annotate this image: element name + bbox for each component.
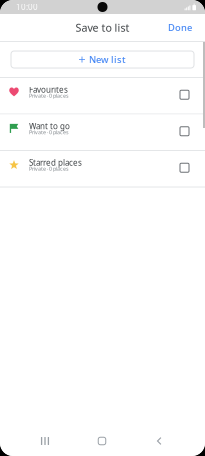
staticText: Done — [168, 21, 192, 34]
button[interactable]: Recent apps — [23, 426, 67, 456]
button[interactable]: Back — [137, 426, 181, 456]
staticText: Private · 0 places — [29, 92, 69, 99]
staticText: Starred places — [29, 157, 82, 168]
staticText: Private · 0 places — [29, 165, 69, 172]
staticText: Favourites — [29, 84, 68, 95]
button[interactable]: Done — [156, 14, 205, 41]
staticText: Private · 0 places — [29, 128, 69, 136]
staticText: New list — [89, 53, 126, 66]
button[interactable]: Favourites — [0, 78, 205, 113]
button[interactable]: Starred places — [0, 151, 205, 186]
button[interactable]: New list — [11, 51, 194, 68]
button[interactable]: Want to go — [0, 114, 205, 150]
staticText: Want to go — [29, 121, 70, 131]
staticText: Save to list — [75, 20, 129, 35]
staticText: 10:00 — [16, 2, 38, 12]
button[interactable]: Home — [80, 426, 124, 456]
